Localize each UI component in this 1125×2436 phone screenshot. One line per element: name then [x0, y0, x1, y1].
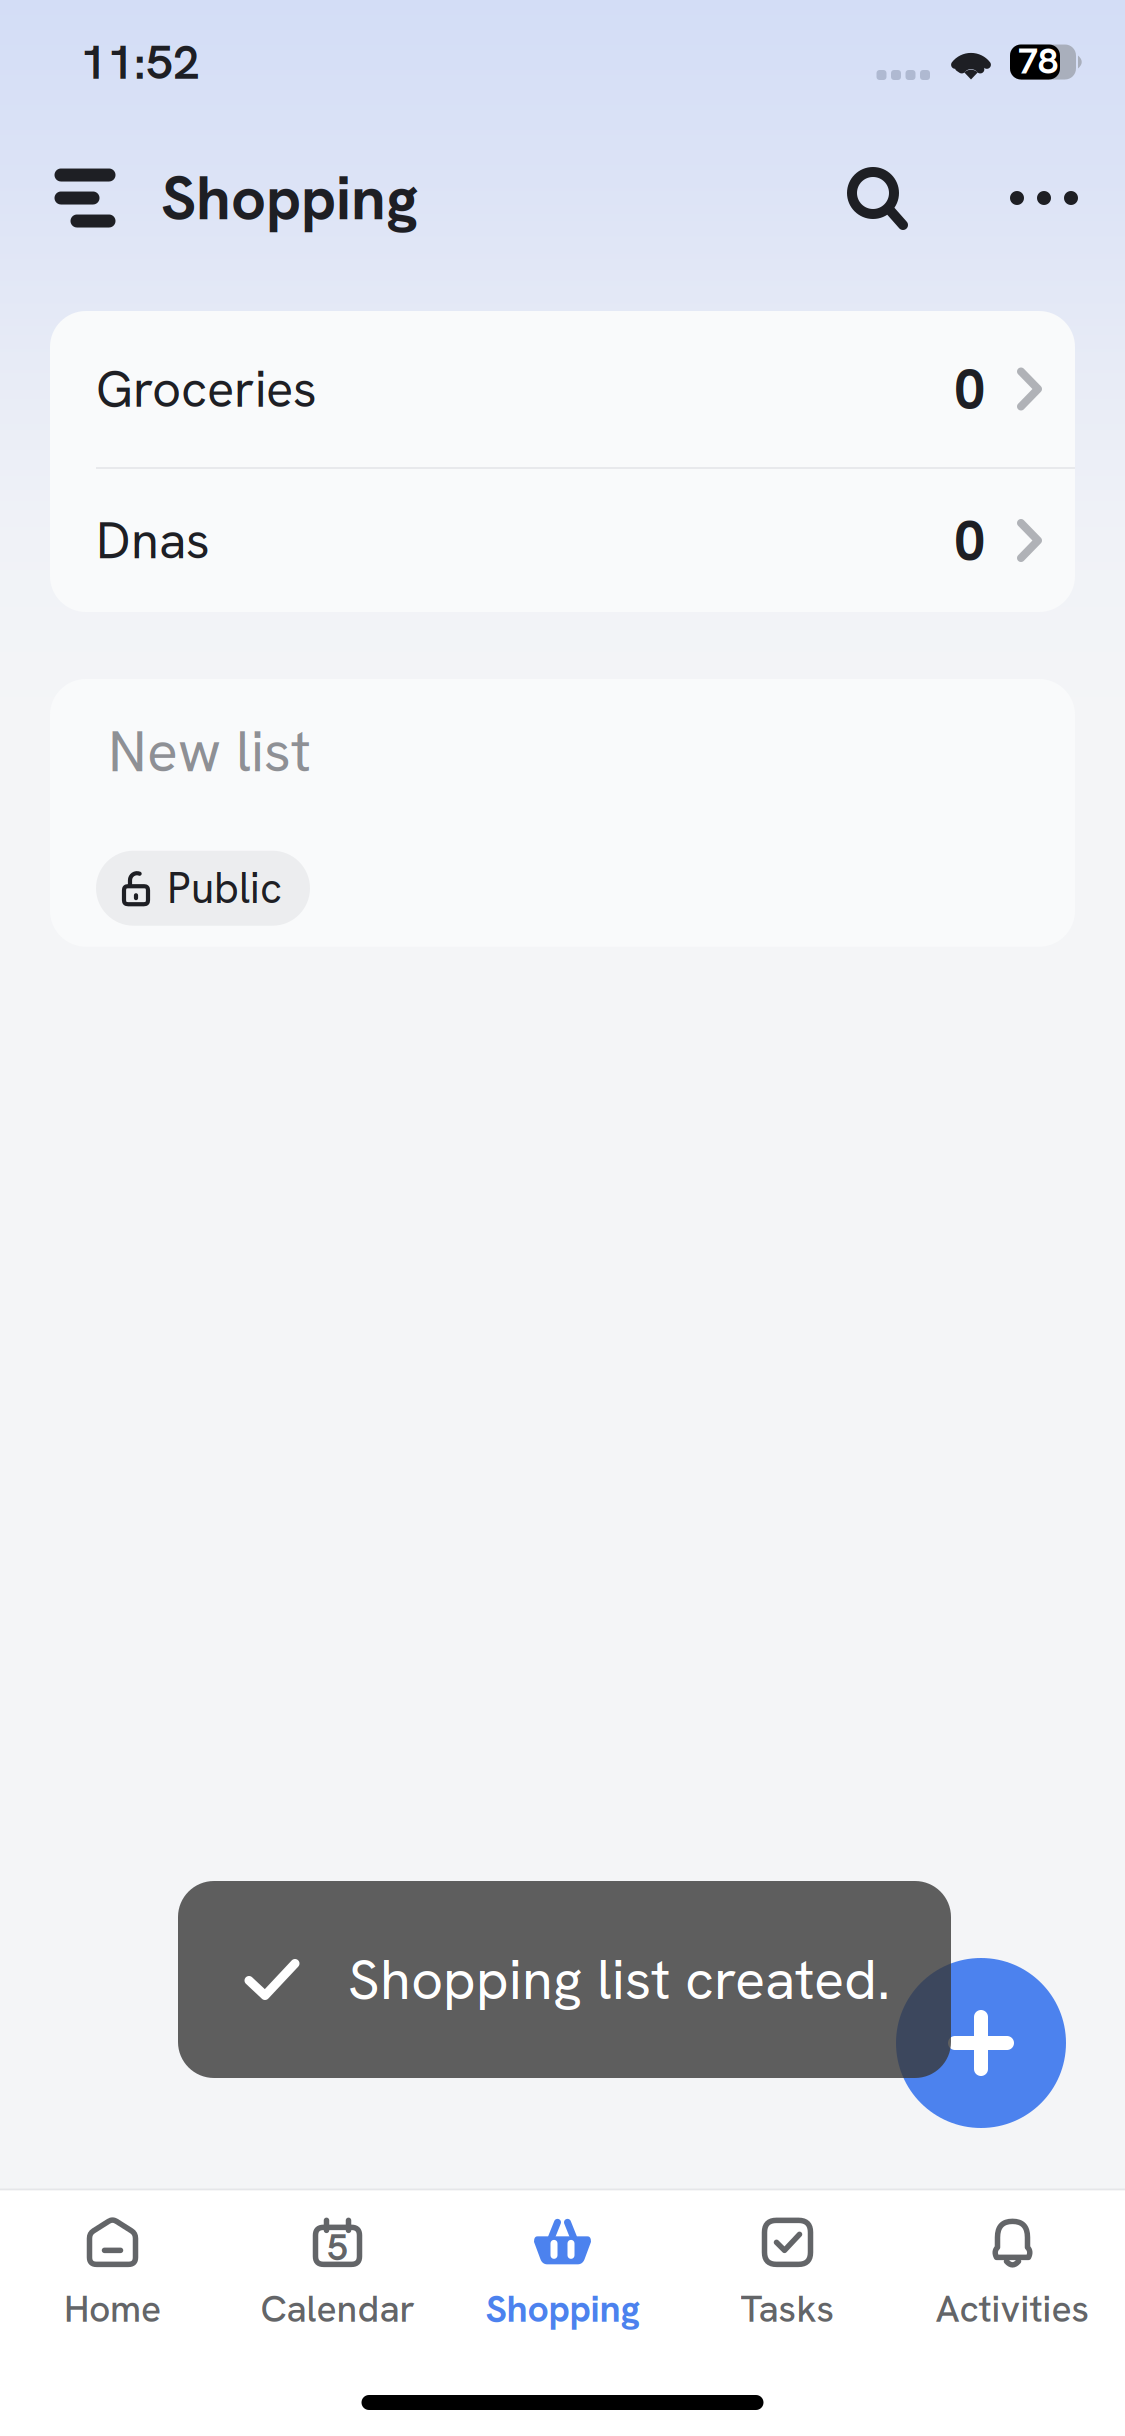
staticText: Activities [935, 2284, 1089, 2333]
staticText: Tasks [740, 2284, 834, 2333]
staticText: 0 [954, 352, 985, 425]
button[interactable]: Add list [896, 1958, 1066, 2128]
staticText: New list [108, 714, 311, 789]
staticText: 5 [327, 2223, 348, 2272]
button[interactable]: Dnas [50, 469, 1075, 612]
staticText: Groceries [96, 356, 317, 422]
staticText: Public [167, 860, 282, 916]
button[interactable]: Home [0, 2216, 225, 2333]
staticText: Calendar [260, 2284, 414, 2333]
button[interactable]: 5 [225, 2216, 450, 2333]
button[interactable]: Tasks [675, 2216, 900, 2333]
staticText: 78 [1018, 37, 1058, 84]
staticText: Home [64, 2284, 161, 2333]
button[interactable]: Activities [900, 2216, 1125, 2333]
button[interactable]: More options [996, 150, 1092, 246]
button[interactable]: Public [96, 851, 310, 926]
staticText: 0 [954, 504, 985, 577]
staticText: Dnas [96, 507, 210, 573]
button[interactable]: Groceries [50, 311, 1075, 467]
staticText: 11:52 [80, 31, 200, 93]
button[interactable]: Shopping [450, 2216, 675, 2333]
staticText: Shopping list created. [348, 1943, 890, 2016]
button[interactable]: Menu [37, 150, 133, 246]
button[interactable]: Search [829, 150, 925, 246]
staticText: Shopping [161, 158, 418, 238]
staticText: Shopping [485, 2284, 639, 2333]
